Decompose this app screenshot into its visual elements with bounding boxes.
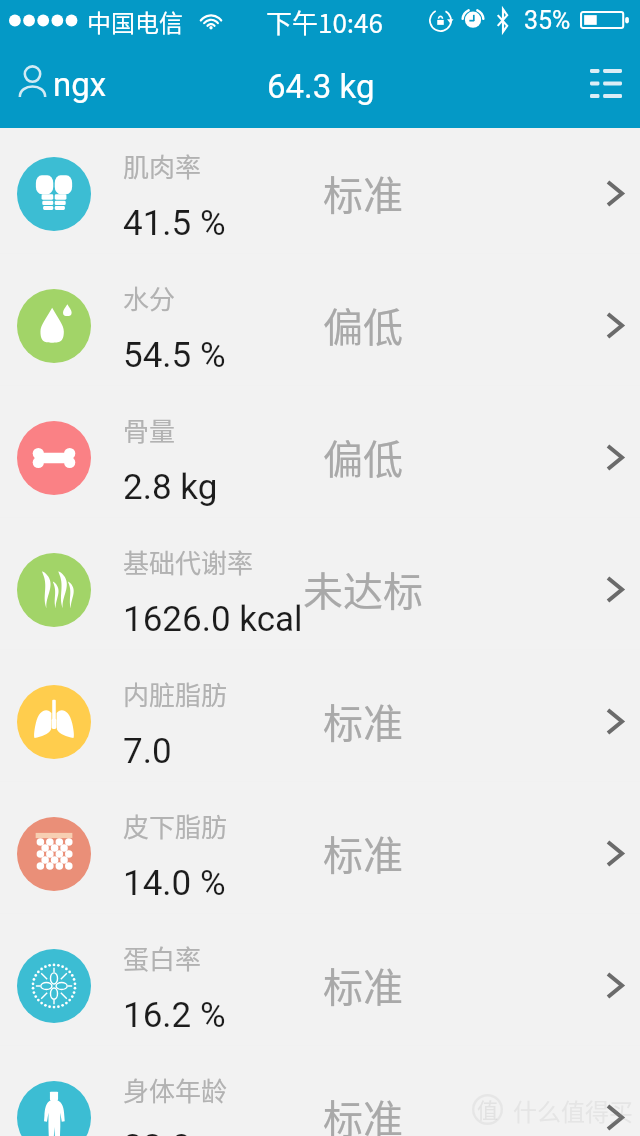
staticText: 下午10:46 (266, 3, 383, 41)
button[interactable]: 肌肉率 (0, 128, 640, 260)
button[interactable]: 内脏脂肪 (0, 656, 640, 788)
button[interactable]: Menu (570, 44, 640, 123)
staticText: 骨量 (123, 411, 176, 449)
button[interactable]: 蛋白率 (0, 920, 640, 1052)
staticText: 偏低 (323, 428, 403, 486)
staticText: 54.5 % (123, 335, 226, 376)
staticText: 值 (477, 1094, 498, 1124)
staticText: 2.8 kg (123, 467, 218, 508)
staticText: 23.0 (123, 1127, 192, 1136)
button[interactable]: ngx (0, 44, 121, 119)
staticText: 肌肉率 (123, 147, 202, 185)
staticText: 标准 (323, 956, 403, 1014)
staticText: 内脏脂肪 (123, 675, 228, 713)
staticText: 水分 (123, 279, 176, 317)
staticText: 基础代谢率 (123, 543, 254, 581)
staticText: 64.3 kg (267, 67, 375, 106)
button[interactable]: 骨量 (0, 392, 640, 524)
staticText: 未达标 (303, 560, 423, 618)
staticText: 41.5 % (123, 203, 226, 244)
staticText: 皮下脂肪 (123, 807, 228, 845)
staticText: 蛋白率 (123, 939, 202, 977)
staticText: 中国电信 (87, 4, 183, 39)
staticText: 身体年龄 (123, 1071, 228, 1109)
staticText: 1626.0 kcal (123, 599, 303, 640)
staticText: 什么值得买 (513, 1093, 633, 1128)
staticText: 标准 (323, 824, 403, 882)
button[interactable]: 身体年龄 (0, 1052, 640, 1136)
staticText: 7.0 (123, 731, 172, 772)
staticText: 16.2 % (123, 995, 226, 1036)
button[interactable]: 皮下脂肪 (0, 788, 640, 920)
staticText: 偏低 (323, 296, 403, 354)
staticText: 标准 (323, 164, 403, 222)
button[interactable]: 基础代谢率 (0, 524, 640, 656)
staticText: 14.0 % (123, 863, 226, 904)
staticText: 标准 (323, 1088, 403, 1136)
staticText: 标准 (323, 692, 403, 750)
staticText: ngx (53, 65, 107, 104)
button[interactable]: 水分 (0, 260, 640, 392)
staticText: 35% (524, 6, 571, 35)
